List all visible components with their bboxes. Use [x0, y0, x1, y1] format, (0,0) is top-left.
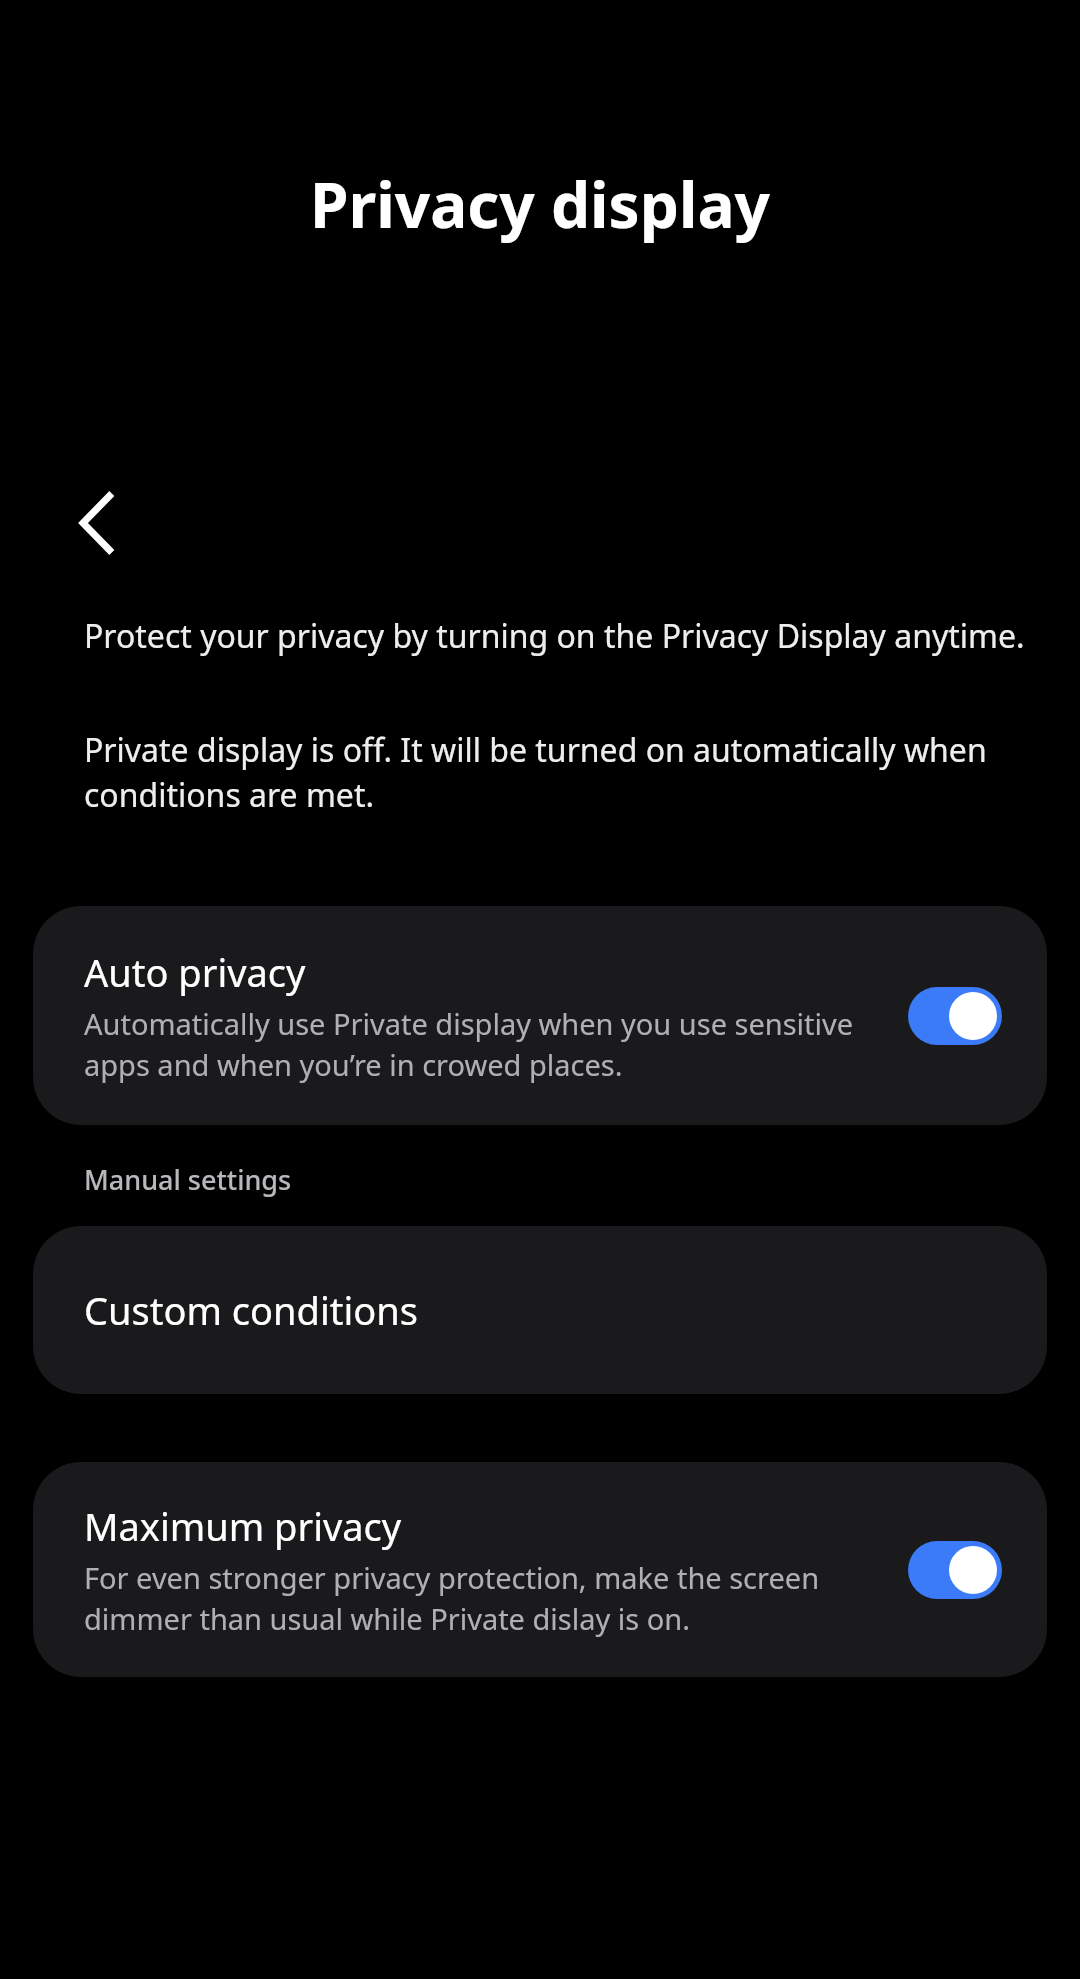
- staticText: Auto privacy: [84, 946, 306, 998]
- button[interactable]: Auto privacy: [33, 906, 1047, 1125]
- button[interactable]: Back: [40, 468, 150, 578]
- staticText: Manual settings: [84, 1161, 292, 1198]
- button[interactable]: Maximum privacy toggle, on: [899, 1531, 1011, 1609]
- staticText: Privacy display: [310, 162, 770, 246]
- button[interactable]: Custom conditions: [33, 1226, 1047, 1394]
- staticText: Protect your privacy by turning on the P…: [84, 614, 1028, 658]
- staticText: Maximum privacy: [84, 1500, 402, 1552]
- staticText: Custom conditions: [84, 1284, 418, 1336]
- button[interactable]: Maximum privacy: [33, 1462, 1047, 1677]
- staticText: Automatically use Private display when y…: [84, 1004, 885, 1085]
- staticText: For even stronger privacy protection, ma…: [84, 1558, 885, 1639]
- staticText: Private display is off. It will be turne…: [84, 728, 1036, 816]
- button[interactable]: Auto privacy toggle, on: [899, 977, 1011, 1055]
